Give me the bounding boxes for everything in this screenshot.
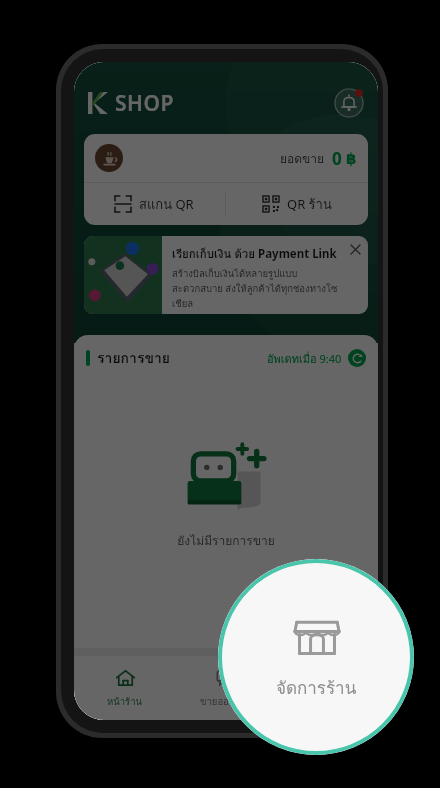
button[interactable]: ขายออนไลน์ — [176, 656, 277, 720]
button[interactable]: จัดการร้าน — [277, 656, 378, 720]
staticText: จัดการร้าน — [276, 674, 357, 701]
button[interactable]: QR ร้าน — [226, 183, 368, 225]
staticText: สร้างบิลเก็บเงินได้หลายรูปแบบ — [172, 266, 298, 281]
button[interactable]: จัดการร้าน — [218, 559, 414, 755]
staticText: ยอดขาย — [280, 149, 325, 168]
staticText: SHOP — [115, 89, 174, 118]
staticText: QR ร้าน — [287, 194, 332, 215]
staticText: เรียกเก็บเงิน ด้วย Payment Link — [172, 245, 337, 263]
button[interactable]: หน้าร้าน — [74, 656, 176, 720]
staticText: ขายออนไลน์ — [200, 694, 253, 709]
staticText: ยังไม่มีรายการขาย — [177, 531, 275, 550]
staticText: 0 — [332, 147, 342, 170]
staticText: ฿ — [346, 150, 357, 167]
button[interactable]: Refresh — [348, 349, 366, 367]
button[interactable]: สแกน QR — [84, 183, 225, 225]
staticText: สแกน QR — [139, 194, 194, 215]
staticText: รายการขาย — [97, 347, 171, 369]
staticText: สะดวกสบาย ส่งให้ลูกค้าได้ทุกช่องทางโซเชี… — [172, 281, 346, 311]
button[interactable]: Notifications — [334, 88, 364, 118]
button[interactable]: Close — [348, 242, 362, 256]
staticText: หน้าร้าน — [107, 694, 143, 709]
button[interactable]: เรียกเก็บเงิน ด้วย Payment Link — [84, 236, 368, 314]
staticText: อัพเดทเมื่อ 9:40 — [267, 350, 342, 367]
